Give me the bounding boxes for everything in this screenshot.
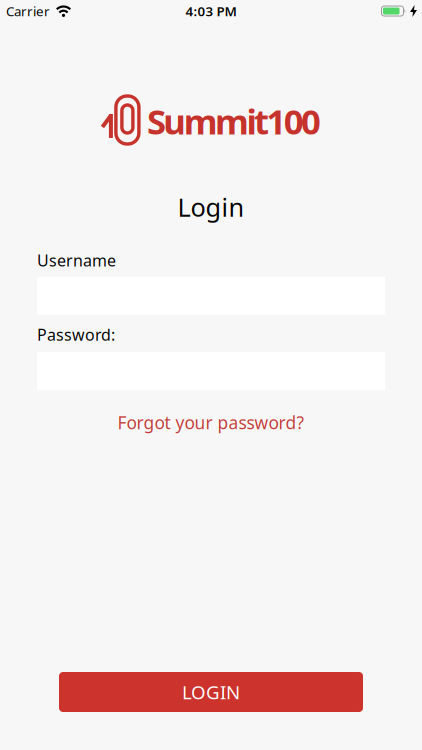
- staticText: 4:03 PM: [185, 2, 236, 20]
- staticText: Summit100: [147, 98, 321, 144]
- staticText: Username: [37, 250, 116, 271]
- button[interactable]: Forgot your password?: [117, 411, 304, 434]
- staticText: Login: [177, 190, 244, 224]
- button[interactable]: LOGIN: [59, 672, 363, 712]
- staticText: Password:: [37, 324, 115, 345]
- staticText: Forgot your password?: [117, 411, 304, 434]
- staticText: Carrier: [6, 2, 50, 20]
- staticText: LOGIN: [182, 680, 240, 704]
